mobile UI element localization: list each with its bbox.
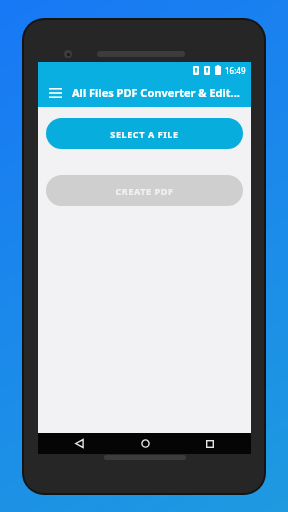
button[interactable]: Recent apps bbox=[185, 433, 235, 454]
button[interactable]: CREATE PDF bbox=[46, 175, 243, 206]
staticText: All Files PDF Converter & Edit... bbox=[72, 85, 240, 100]
button[interactable]: Open navigation menu bbox=[38, 78, 72, 107]
staticText: CREATE PDF bbox=[115, 185, 174, 197]
button[interactable]: Back bbox=[54, 433, 104, 454]
staticText: SELECT A FILE bbox=[110, 128, 179, 140]
button[interactable]: SELECT A FILE bbox=[46, 118, 243, 149]
button[interactable]: Home bbox=[120, 433, 170, 454]
staticText: 16:49 bbox=[225, 65, 246, 76]
